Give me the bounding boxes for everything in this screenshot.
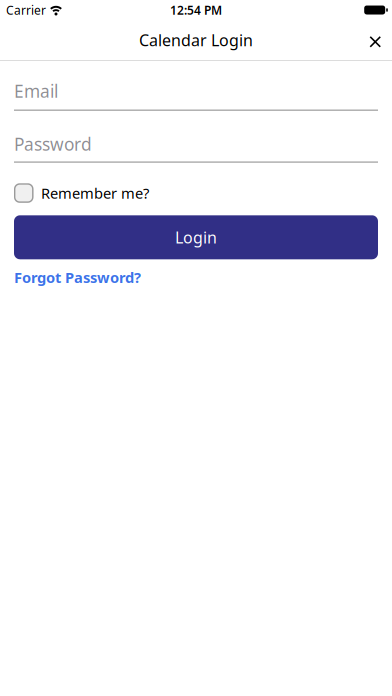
button[interactable]: Login — [14, 215, 378, 259]
button[interactable]: Forgot Password? — [14, 267, 141, 287]
button[interactable]: Password — [14, 131, 378, 163]
staticText: Forgot Password? — [14, 268, 141, 287]
button[interactable]: Remember me? — [14, 183, 149, 203]
staticText: Carrier — [6, 2, 46, 18]
staticText: Remember me? — [41, 183, 149, 203]
button[interactable]: Email — [14, 78, 378, 111]
staticText: Calendar Login — [139, 29, 253, 51]
staticText: Password — [14, 132, 92, 155]
staticText: Login — [175, 227, 217, 248]
staticText: Email — [14, 79, 58, 102]
button[interactable] — [358, 20, 392, 60]
staticText: 12:54 PM — [170, 2, 222, 18]
